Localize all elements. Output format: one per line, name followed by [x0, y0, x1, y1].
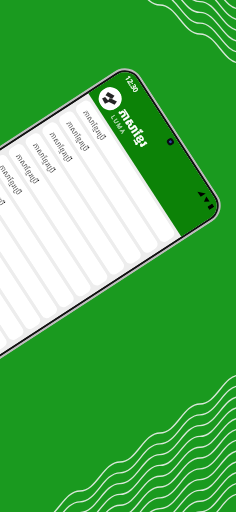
staticText: ភាសាខ្មែរប្រើ [81, 108, 108, 143]
button[interactable]: ភាសាខ្មែរប្រើ [74, 98, 177, 244]
button[interactable]: ភាសាខ្មែរប្រើ [23, 131, 126, 277]
staticText: ភាសាខ្មែរ [116, 105, 152, 150]
staticText: 12:30 [122, 74, 140, 94]
button[interactable]: ភាសាខ្មែរប្រើ [6, 142, 109, 288]
button[interactable]: ភាសាខ្មែរប្រើ [40, 120, 143, 266]
button[interactable]: ភាសាខ្មែរប្រើ [0, 153, 93, 299]
button[interactable]: ភាសាខ្មែរប្រើ [57, 109, 160, 255]
button[interactable]: ភាសាខ្មែរប្រើ [0, 196, 26, 342]
staticText: ភាសាខ្មែរប្រើ [31, 141, 58, 175]
staticText: ភាសាខ្មែរប្រើ [14, 151, 41, 186]
staticText: ភាសាខ្មែរប្រើ [47, 130, 75, 164]
button[interactable]: ភាសាខ្មែរប្រើ [0, 174, 59, 320]
button[interactable]: ភាសាខ្មែរប្រើ [0, 185, 42, 331]
staticText: ភាសាខ្មែរប្រើ [0, 173, 8, 208]
staticText: LUMA [109, 113, 128, 136]
button[interactable]: ភាសាខ្មែរប្រើ [0, 164, 76, 310]
button[interactable]: ភាសាខ្មែរប្រើ [0, 207, 9, 353]
staticText: ភាសាខ្មែរប្រើ [0, 162, 25, 197]
staticText: ភាសាខ្មែរប្រើ [64, 119, 92, 154]
